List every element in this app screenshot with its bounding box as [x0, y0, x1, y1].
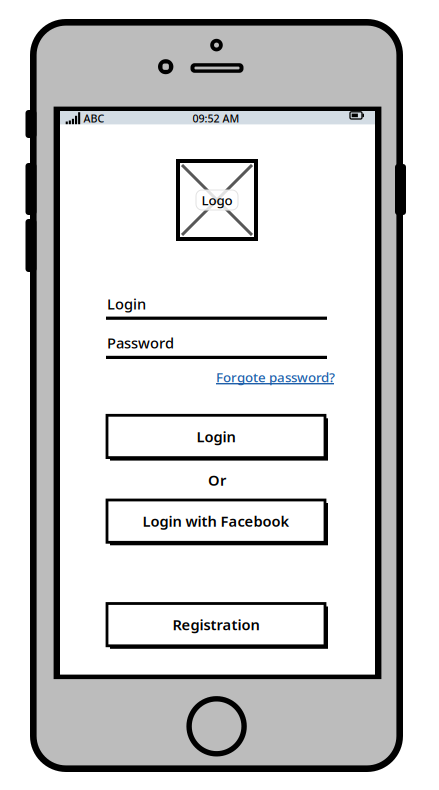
button[interactable]: Home — [0, 0, 439, 790]
staticText: Password — [107, 333, 174, 353]
staticText: Login — [196, 427, 235, 446]
button[interactable]: Registration — [0, 0, 439, 790]
staticText: Login with Facebook — [142, 511, 289, 531]
staticText: Logo — [201, 191, 232, 209]
staticText: Forgote password? — [216, 368, 335, 386]
button[interactable]: Forgote password? — [0, 0, 439, 790]
staticText: Or — [208, 470, 226, 490]
button[interactable]: Login with Facebook — [0, 0, 439, 790]
button[interactable]: Login — [0, 0, 439, 790]
staticText: Registration — [172, 615, 259, 634]
staticText: Login — [107, 294, 146, 313]
staticText: ABC — [83, 111, 104, 125]
staticText: 09:52 AM — [192, 111, 239, 125]
